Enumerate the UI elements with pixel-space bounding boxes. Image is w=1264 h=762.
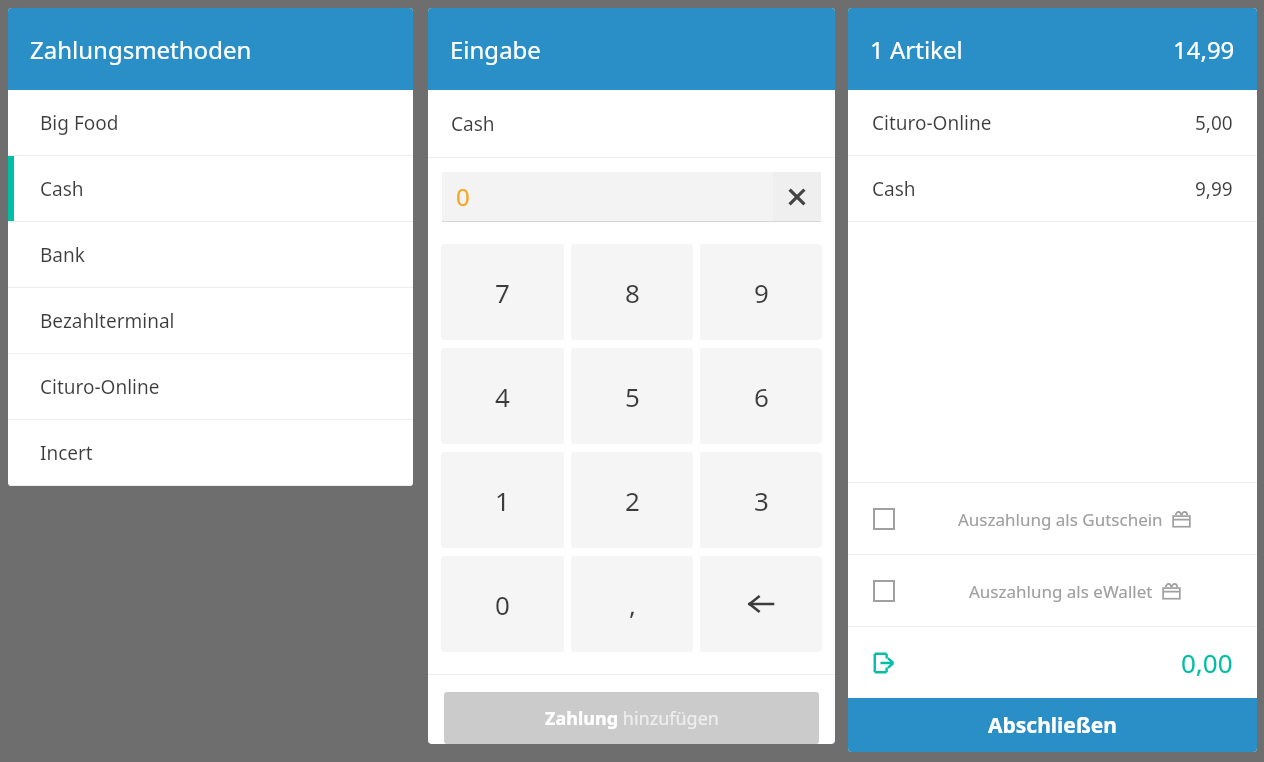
- button[interactable]: 2: [571, 452, 693, 548]
- button[interactable]: 9: [700, 244, 822, 340]
- staticText: 0,00: [1181, 645, 1233, 680]
- button[interactable]: Backspace: [700, 556, 822, 652]
- staticText: 5,00: [1195, 110, 1233, 136]
- button[interactable]: 8: [571, 244, 693, 340]
- staticText: ,: [629, 587, 636, 622]
- button[interactable]: Cash: [8, 156, 413, 222]
- button[interactable]: Zahlung hinzufügen: [444, 692, 819, 744]
- button[interactable]: 0: [441, 556, 564, 652]
- button[interactable]: Incert: [8, 420, 413, 486]
- staticText: Abschließen: [988, 711, 1117, 740]
- button[interactable]: Abschließen: [848, 698, 1257, 752]
- staticText: 7: [495, 275, 510, 310]
- staticText: 6: [754, 379, 769, 414]
- button[interactable]: Auszahlung als eWallet: [848, 555, 1257, 627]
- button[interactable]: Big Food: [8, 90, 413, 156]
- staticText: Cituro-Online: [872, 110, 992, 136]
- button[interactable]: 0: [442, 172, 821, 221]
- staticText: Auszahlung als Gutschein: [958, 508, 1163, 531]
- button[interactable]: Cash: [848, 156, 1257, 222]
- button[interactable]: Auszahlung: [873, 652, 895, 674]
- staticText: 0: [495, 587, 510, 622]
- button[interactable]: 7: [441, 244, 564, 340]
- staticText: Incert: [40, 440, 93, 466]
- button[interactable]: Clear: [773, 172, 821, 221]
- staticText: 2: [625, 483, 640, 518]
- staticText: Cash: [451, 111, 495, 137]
- staticText: Zahlungsmethoden: [30, 33, 252, 66]
- staticText: Cash: [872, 176, 916, 202]
- button[interactable]: ,: [571, 556, 693, 652]
- staticText: 1: [495, 483, 510, 518]
- button[interactable]: 1: [441, 452, 564, 548]
- staticText: 4: [495, 379, 510, 414]
- button[interactable]: Cituro-Online: [848, 90, 1257, 156]
- staticText: Bezahlterminal: [40, 308, 175, 334]
- staticText: 1 Artikel: [870, 33, 963, 66]
- button[interactable]: 3: [700, 452, 822, 548]
- button[interactable]: 4: [441, 348, 564, 444]
- button[interactable]: Auszahlung als Gutschein: [848, 483, 1257, 555]
- staticText: 9: [754, 275, 769, 310]
- staticText: 9,99: [1195, 176, 1233, 202]
- staticText: 14,99: [1173, 33, 1235, 66]
- staticText: Bank: [40, 242, 85, 268]
- staticText: Cash: [40, 176, 84, 202]
- staticText: Zahlung hinzufügen: [545, 706, 719, 731]
- button[interactable]: 5: [571, 348, 693, 444]
- staticText: 0: [456, 180, 773, 213]
- button[interactable]: Cituro-Online: [8, 354, 413, 420]
- staticText: Eingabe: [450, 33, 541, 66]
- button[interactable]: 6: [700, 348, 822, 444]
- button[interactable]: Bezahlterminal: [8, 288, 413, 354]
- staticText: 8: [625, 275, 640, 310]
- staticText: Big Food: [40, 110, 119, 136]
- button[interactable]: Bank: [8, 222, 413, 288]
- staticText: 3: [754, 483, 769, 518]
- staticText: 5: [625, 379, 640, 414]
- staticText: Cituro-Online: [40, 374, 160, 400]
- staticText: Auszahlung als eWallet: [969, 580, 1153, 603]
